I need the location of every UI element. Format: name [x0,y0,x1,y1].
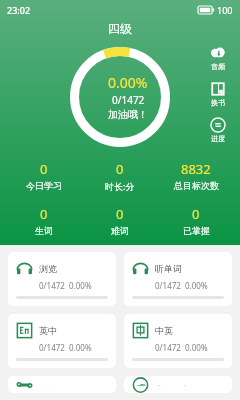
button[interactable]: 0 [82,205,158,236]
staticText: 总目标次数 [174,180,219,191]
button[interactable]: 换书 [206,80,230,108]
button[interactable]: 进度 [206,116,230,144]
staticText: 0 [116,160,124,178]
staticText: 四级 [108,21,132,36]
staticText: 已掌握 [183,225,210,236]
button[interactable]: 中英 [124,314,232,368]
button[interactable]: 浏览 [8,252,116,306]
staticText: 23:02 [7,4,31,16]
staticText: 0/1472 0.00% [155,280,208,291]
staticText: 0.00% [108,73,148,92]
staticText: 0 [40,160,48,178]
staticText: 加油哦！ [108,108,148,121]
staticText: 换书 [211,98,225,107]
staticText: 0/1472 0.00% [155,342,208,353]
button[interactable]: 0 [6,205,82,236]
staticText: 0/1472 0.00% [39,342,92,353]
staticText: 进度 [211,134,225,143]
staticText: 0 [116,205,124,223]
staticText: 音频 [211,62,225,71]
staticText: 浏览 [39,263,57,274]
staticText: 0/1472 [112,93,145,107]
button[interactable]: 0 [158,205,234,236]
button[interactable]: 多词匹配 [8,376,116,393]
staticText: 0 [40,205,48,223]
staticText: 0 [192,205,200,223]
staticText: 今日学习 [26,180,62,191]
staticText: 听单词 [155,263,182,274]
staticText: 完整解释 [155,384,191,386]
button[interactable]: 8832 [158,160,234,191]
staticText: 英中 [39,325,57,336]
button[interactable]: 音频 [206,44,230,72]
staticText: 难词 [111,225,129,236]
button[interactable]: 完整解释 [124,376,232,393]
button[interactable]: 英中 [8,314,116,368]
staticText: 生词 [35,225,53,236]
button[interactable]: 0 [82,160,158,192]
button[interactable]: 听单词 [124,252,232,306]
staticText: 中英 [155,325,173,336]
staticText: 8832 [181,160,211,178]
staticText: 0/1472 0.00% [39,280,92,291]
button[interactable]: 0 [6,160,82,191]
staticText: 100 [217,4,233,16]
staticText: 时长:分 [105,180,135,192]
